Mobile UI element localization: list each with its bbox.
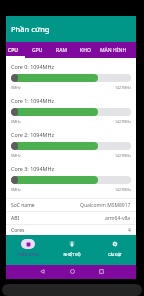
staticText: 1427MHz	[115, 153, 131, 158]
staticText: RAM	[56, 47, 68, 54]
staticText: NHIỆT ĐỘ	[63, 252, 81, 257]
button[interactable]: PHẦN CỨNG	[6, 235, 50, 265]
button[interactable]: RAM	[50, 42, 74, 58]
staticText: 1427MHz	[115, 119, 131, 124]
staticText: 0MHz	[11, 187, 21, 192]
staticText: 0MHz	[11, 153, 21, 158]
button[interactable]: Recents	[99, 269, 104, 274]
button[interactable]: Back	[40, 269, 45, 274]
button[interactable]: NHIỆT ĐỘ	[50, 235, 93, 265]
staticText: CÀI ĐẶT	[108, 252, 122, 257]
staticText: Core 0: 1094MHz	[11, 63, 54, 70]
staticText: 1427MHz	[115, 187, 131, 192]
staticText: GPU	[32, 47, 43, 54]
staticText: Core 3: 1094MHz	[11, 165, 54, 172]
staticText: CPU	[8, 47, 18, 54]
staticText: MÀN HÌNH	[100, 47, 127, 54]
staticText: ABI	[11, 215, 20, 222]
staticText: 0MHz	[11, 85, 21, 90]
staticText: SoC name	[11, 202, 35, 209]
button[interactable]: GPU	[25, 42, 50, 58]
button[interactable]: CPU	[6, 42, 25, 58]
staticText: Core 2: 1094MHz	[11, 131, 54, 138]
staticText: Qualcomm MSM8917	[80, 202, 131, 209]
button[interactable]: KHO	[74, 42, 97, 58]
staticText: Phần cứng	[11, 24, 50, 34]
staticText: arm64-v8a	[105, 215, 131, 222]
staticText: 1427MHz	[115, 85, 131, 90]
staticText: KHO	[80, 47, 91, 54]
staticText: 4	[128, 227, 131, 234]
staticText: Cores	[11, 227, 25, 234]
staticText: PHẦN CỨNG	[17, 252, 39, 257]
button[interactable]: MÀN HÌNH	[97, 42, 130, 58]
button[interactable]: Home	[70, 269, 75, 274]
button[interactable]: CÀI ĐẶT	[93, 235, 136, 265]
staticText: Core 1: 1094MHz	[11, 97, 54, 104]
staticText: 0MHz	[11, 119, 21, 124]
